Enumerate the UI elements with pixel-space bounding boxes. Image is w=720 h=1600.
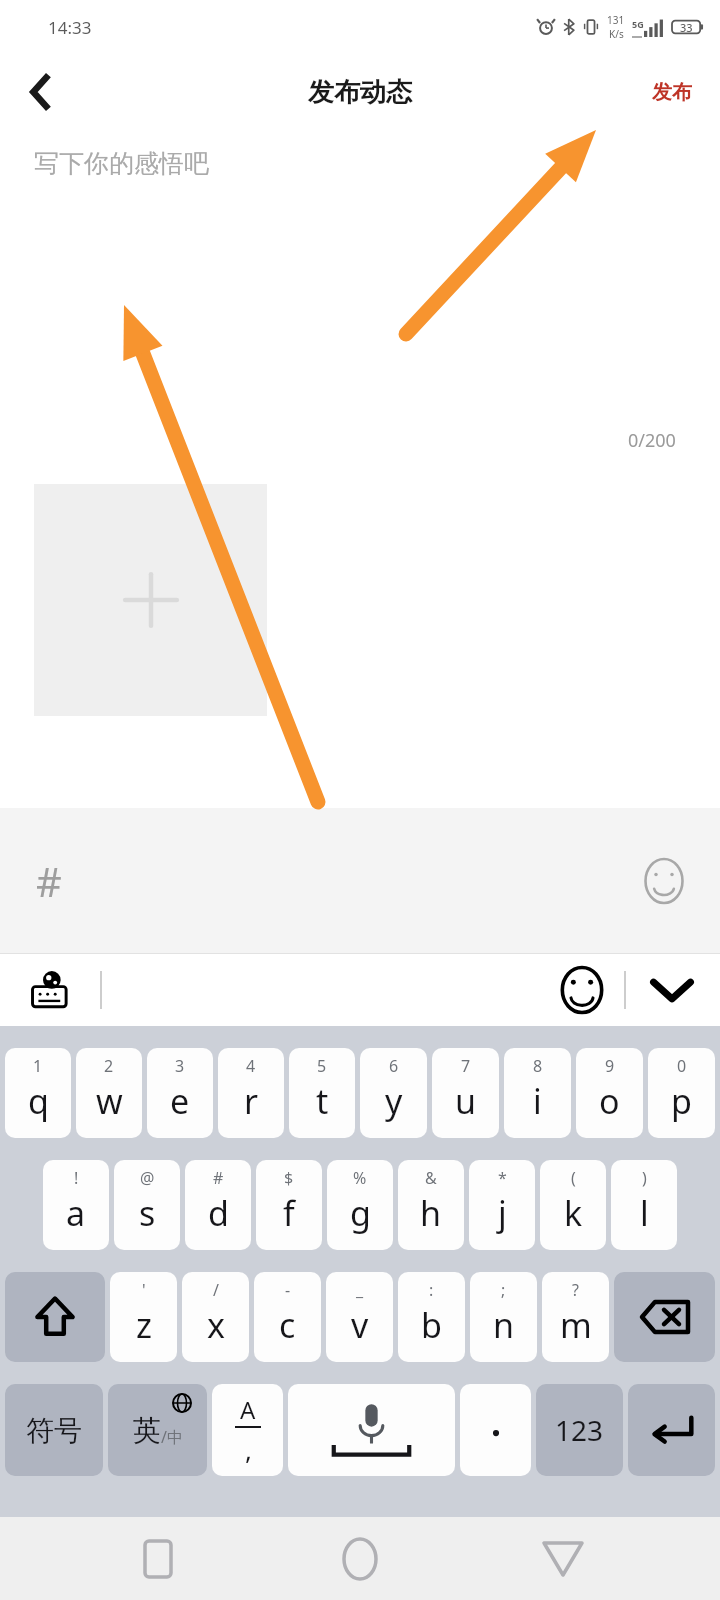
button[interactable]: Add photo xyxy=(34,484,267,716)
staticText: t xyxy=(316,1078,329,1124)
button[interactable] xyxy=(460,1384,531,1476)
staticText: c xyxy=(279,1302,296,1348)
button[interactable]: 3 xyxy=(147,1048,213,1138)
staticText: A xyxy=(240,1393,256,1426)
staticText: 3 xyxy=(175,1055,185,1077)
staticText: r xyxy=(244,1078,259,1124)
staticText: @ xyxy=(140,1167,155,1189)
button[interactable]: Back xyxy=(0,54,80,130)
staticText: w xyxy=(96,1078,123,1124)
button[interactable]: ? xyxy=(542,1272,609,1362)
staticText: 符号 xyxy=(26,1413,82,1448)
button[interactable]: # xyxy=(185,1160,251,1250)
button[interactable]: Enter xyxy=(628,1384,715,1476)
button[interactable]: & xyxy=(398,1160,464,1250)
staticText: g xyxy=(350,1190,371,1236)
staticText: 14:33 xyxy=(48,16,92,39)
staticText: 5G xyxy=(632,18,644,30)
staticText: o xyxy=(599,1078,620,1124)
staticText: / xyxy=(213,1279,219,1301)
button[interactable]: Switch input language xyxy=(24,963,78,1017)
staticText: f xyxy=(283,1190,295,1236)
button[interactable]: A xyxy=(212,1384,283,1476)
staticText: u xyxy=(455,1078,477,1124)
staticText: 发布动态 xyxy=(308,76,412,109)
staticText: p xyxy=(671,1078,692,1124)
button[interactable]: Space xyxy=(288,1384,455,1476)
button[interactable]: Shift xyxy=(5,1272,105,1362)
button[interactable]: * xyxy=(469,1160,535,1250)
staticText: 发布 xyxy=(652,80,692,105)
button[interactable]: : xyxy=(398,1272,465,1362)
staticText: /中 xyxy=(161,1426,183,1448)
staticText: 4 xyxy=(246,1055,256,1077)
button[interactable]: 123 xyxy=(536,1384,623,1476)
button[interactable]: ( xyxy=(540,1160,606,1250)
staticText: s xyxy=(139,1190,156,1236)
button[interactable]: Back xyxy=(518,1517,608,1600)
staticText: # xyxy=(36,854,62,908)
staticText: $ xyxy=(284,1167,294,1189)
button[interactable]: 4 xyxy=(218,1048,284,1138)
staticText: 131 xyxy=(607,13,625,27)
button[interactable]: 0 xyxy=(648,1048,715,1138)
staticText: n xyxy=(493,1302,515,1348)
button[interactable]: / xyxy=(182,1272,249,1362)
staticText: : xyxy=(429,1279,434,1301)
staticText: 0 xyxy=(677,1055,687,1077)
button[interactable]: % xyxy=(327,1160,393,1250)
button[interactable]: 写下你的感悟吧 xyxy=(34,148,209,179)
staticText: q xyxy=(28,1078,49,1124)
button[interactable]: 6 xyxy=(360,1048,427,1138)
button[interactable]: # xyxy=(0,808,720,954)
button[interactable]: $ xyxy=(256,1160,322,1250)
button[interactable]: 符号 xyxy=(5,1384,103,1476)
staticText: 5 xyxy=(317,1055,327,1077)
staticText: , xyxy=(245,1432,252,1467)
button[interactable]: Emoji xyxy=(636,853,692,909)
staticText: & xyxy=(425,1167,437,1189)
staticText: y xyxy=(385,1078,403,1124)
staticText: v xyxy=(351,1302,369,1348)
button[interactable]: Backspace xyxy=(614,1272,715,1362)
button[interactable]: 5 xyxy=(289,1048,355,1138)
staticText: - xyxy=(285,1279,291,1301)
button[interactable]: ! xyxy=(43,1160,109,1250)
staticText: l xyxy=(640,1190,649,1236)
button[interactable]: Emoji keyboard xyxy=(552,960,612,1020)
staticText: ? xyxy=(572,1279,579,1301)
staticText: d xyxy=(208,1190,229,1236)
staticText: 0/200 xyxy=(628,428,676,453)
staticText: ; xyxy=(501,1279,506,1301)
button[interactable]: 8 xyxy=(504,1048,571,1138)
button[interactable]: ) xyxy=(611,1160,677,1250)
button[interactable]: 发布 xyxy=(652,80,692,105)
staticText: # xyxy=(213,1167,224,1189)
button[interactable]: ; xyxy=(470,1272,537,1362)
staticText: 6 xyxy=(389,1055,399,1077)
button[interactable]: 2 xyxy=(76,1048,142,1138)
staticText: 8 xyxy=(533,1055,543,1077)
staticText: 7 xyxy=(461,1055,471,1077)
button[interactable]: Home xyxy=(315,1517,405,1600)
button[interactable]: ' xyxy=(110,1272,177,1362)
staticText: 1 xyxy=(33,1055,43,1077)
button[interactable]: 英 xyxy=(108,1384,207,1476)
staticText: m xyxy=(560,1302,592,1348)
staticText: _ xyxy=(356,1279,364,1301)
staticText: K/s xyxy=(609,27,624,41)
button[interactable]: Hide keyboard xyxy=(640,958,704,1022)
staticText: h xyxy=(420,1190,442,1236)
button[interactable]: 7 xyxy=(432,1048,499,1138)
button[interactable]: _ xyxy=(326,1272,393,1362)
staticText: 123 xyxy=(555,1411,604,1449)
staticText: i xyxy=(533,1078,542,1124)
staticText: 英 xyxy=(133,1413,161,1448)
staticText: ' xyxy=(142,1279,146,1301)
button[interactable]: 9 xyxy=(576,1048,643,1138)
button[interactable]: 1 xyxy=(5,1048,71,1138)
button[interactable]: Recents xyxy=(113,1517,203,1600)
button[interactable]: - xyxy=(254,1272,321,1362)
button[interactable]: @ xyxy=(114,1160,180,1250)
staticText: a xyxy=(66,1190,86,1236)
